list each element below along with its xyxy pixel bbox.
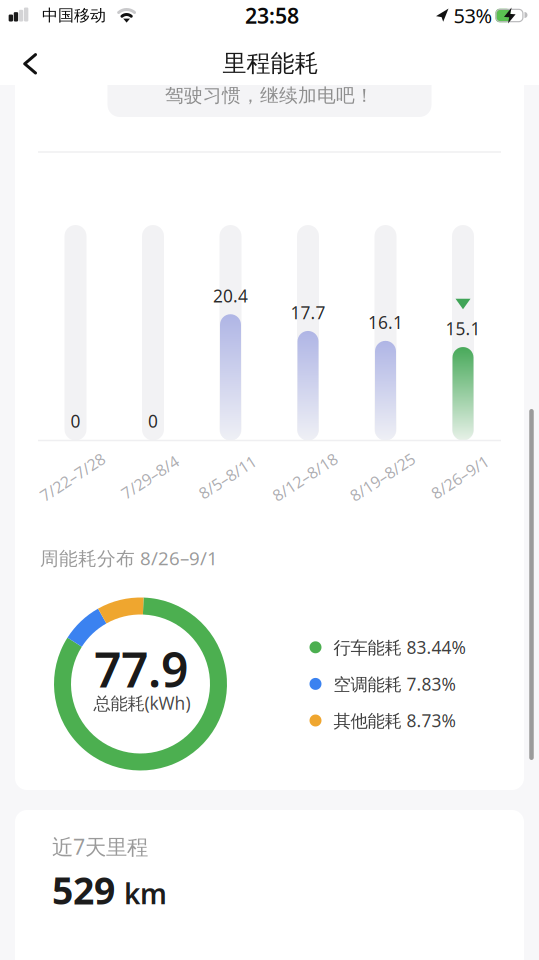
- staticText: 8/26–9/1: [427, 466, 492, 488]
- staticText: 行车能耗 83.44%: [333, 636, 465, 659]
- staticText: 8/5–8/11: [195, 466, 260, 488]
- staticText: 驾驶习惯，继续加电吧！: [165, 84, 374, 107]
- staticText: 7/22–7/28: [35, 466, 109, 488]
- staticText: 周能耗分布 8/26–9/1: [40, 546, 218, 570]
- staticText: 53%: [453, 2, 492, 29]
- staticText: 近7天里程: [52, 832, 148, 861]
- staticText: 其他能耗 8.73%: [333, 709, 455, 732]
- button[interactable]: Back: [8, 43, 52, 85]
- staticText: 0: [70, 409, 80, 432]
- staticText: 空调能耗 7.83%: [333, 672, 455, 695]
- staticText: 7/29–8/4: [117, 466, 182, 488]
- staticText: 20.4: [213, 284, 248, 307]
- staticText: 529: [52, 865, 115, 915]
- staticText: 8/12–8/18: [268, 466, 342, 488]
- staticText: 16.1: [368, 311, 403, 334]
- staticText: 77.9: [94, 637, 188, 701]
- staticText: 中国移动: [42, 6, 106, 25]
- staticText: 23:58: [245, 1, 299, 30]
- staticText: 8/19–8/25: [345, 466, 419, 488]
- staticText: 里程能耗: [222, 49, 318, 78]
- staticText: 15.1: [445, 317, 480, 340]
- staticText: 总能耗(kWh): [93, 691, 190, 714]
- staticText: km: [124, 875, 167, 912]
- staticText: 0: [148, 409, 158, 432]
- staticText: 17.7: [290, 301, 325, 324]
